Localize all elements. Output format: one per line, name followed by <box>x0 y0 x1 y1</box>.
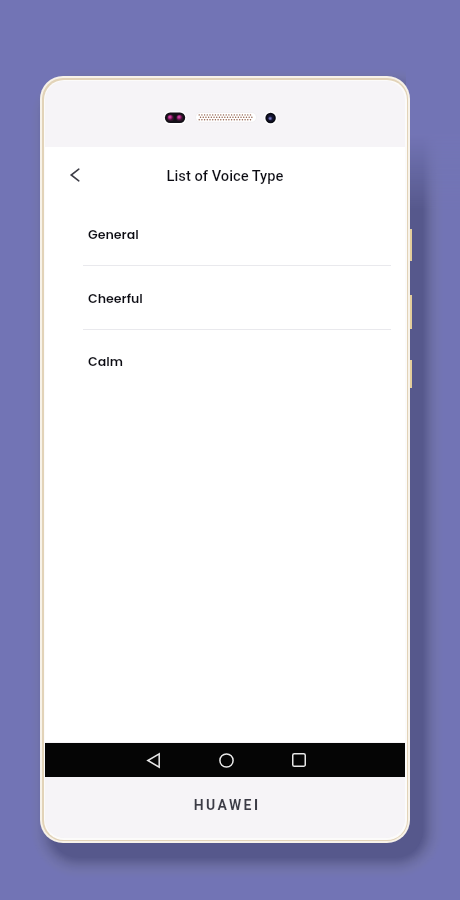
button[interactable]: Home <box>211 745 241 775</box>
staticText: Calm <box>88 353 123 371</box>
staticText: HUAWEI <box>47 797 405 813</box>
staticText: Cheerful <box>88 290 143 308</box>
button[interactable]: Back <box>57 157 93 193</box>
button[interactable]: Recents <box>284 745 314 775</box>
staticText: General <box>88 226 139 244</box>
button[interactable]: Back <box>138 745 168 775</box>
button[interactable]: Cheerful <box>45 267 405 330</box>
button[interactable]: Calm <box>45 330 405 393</box>
button[interactable]: General <box>45 203 405 266</box>
staticText: List of Voice Type <box>45 167 405 184</box>
